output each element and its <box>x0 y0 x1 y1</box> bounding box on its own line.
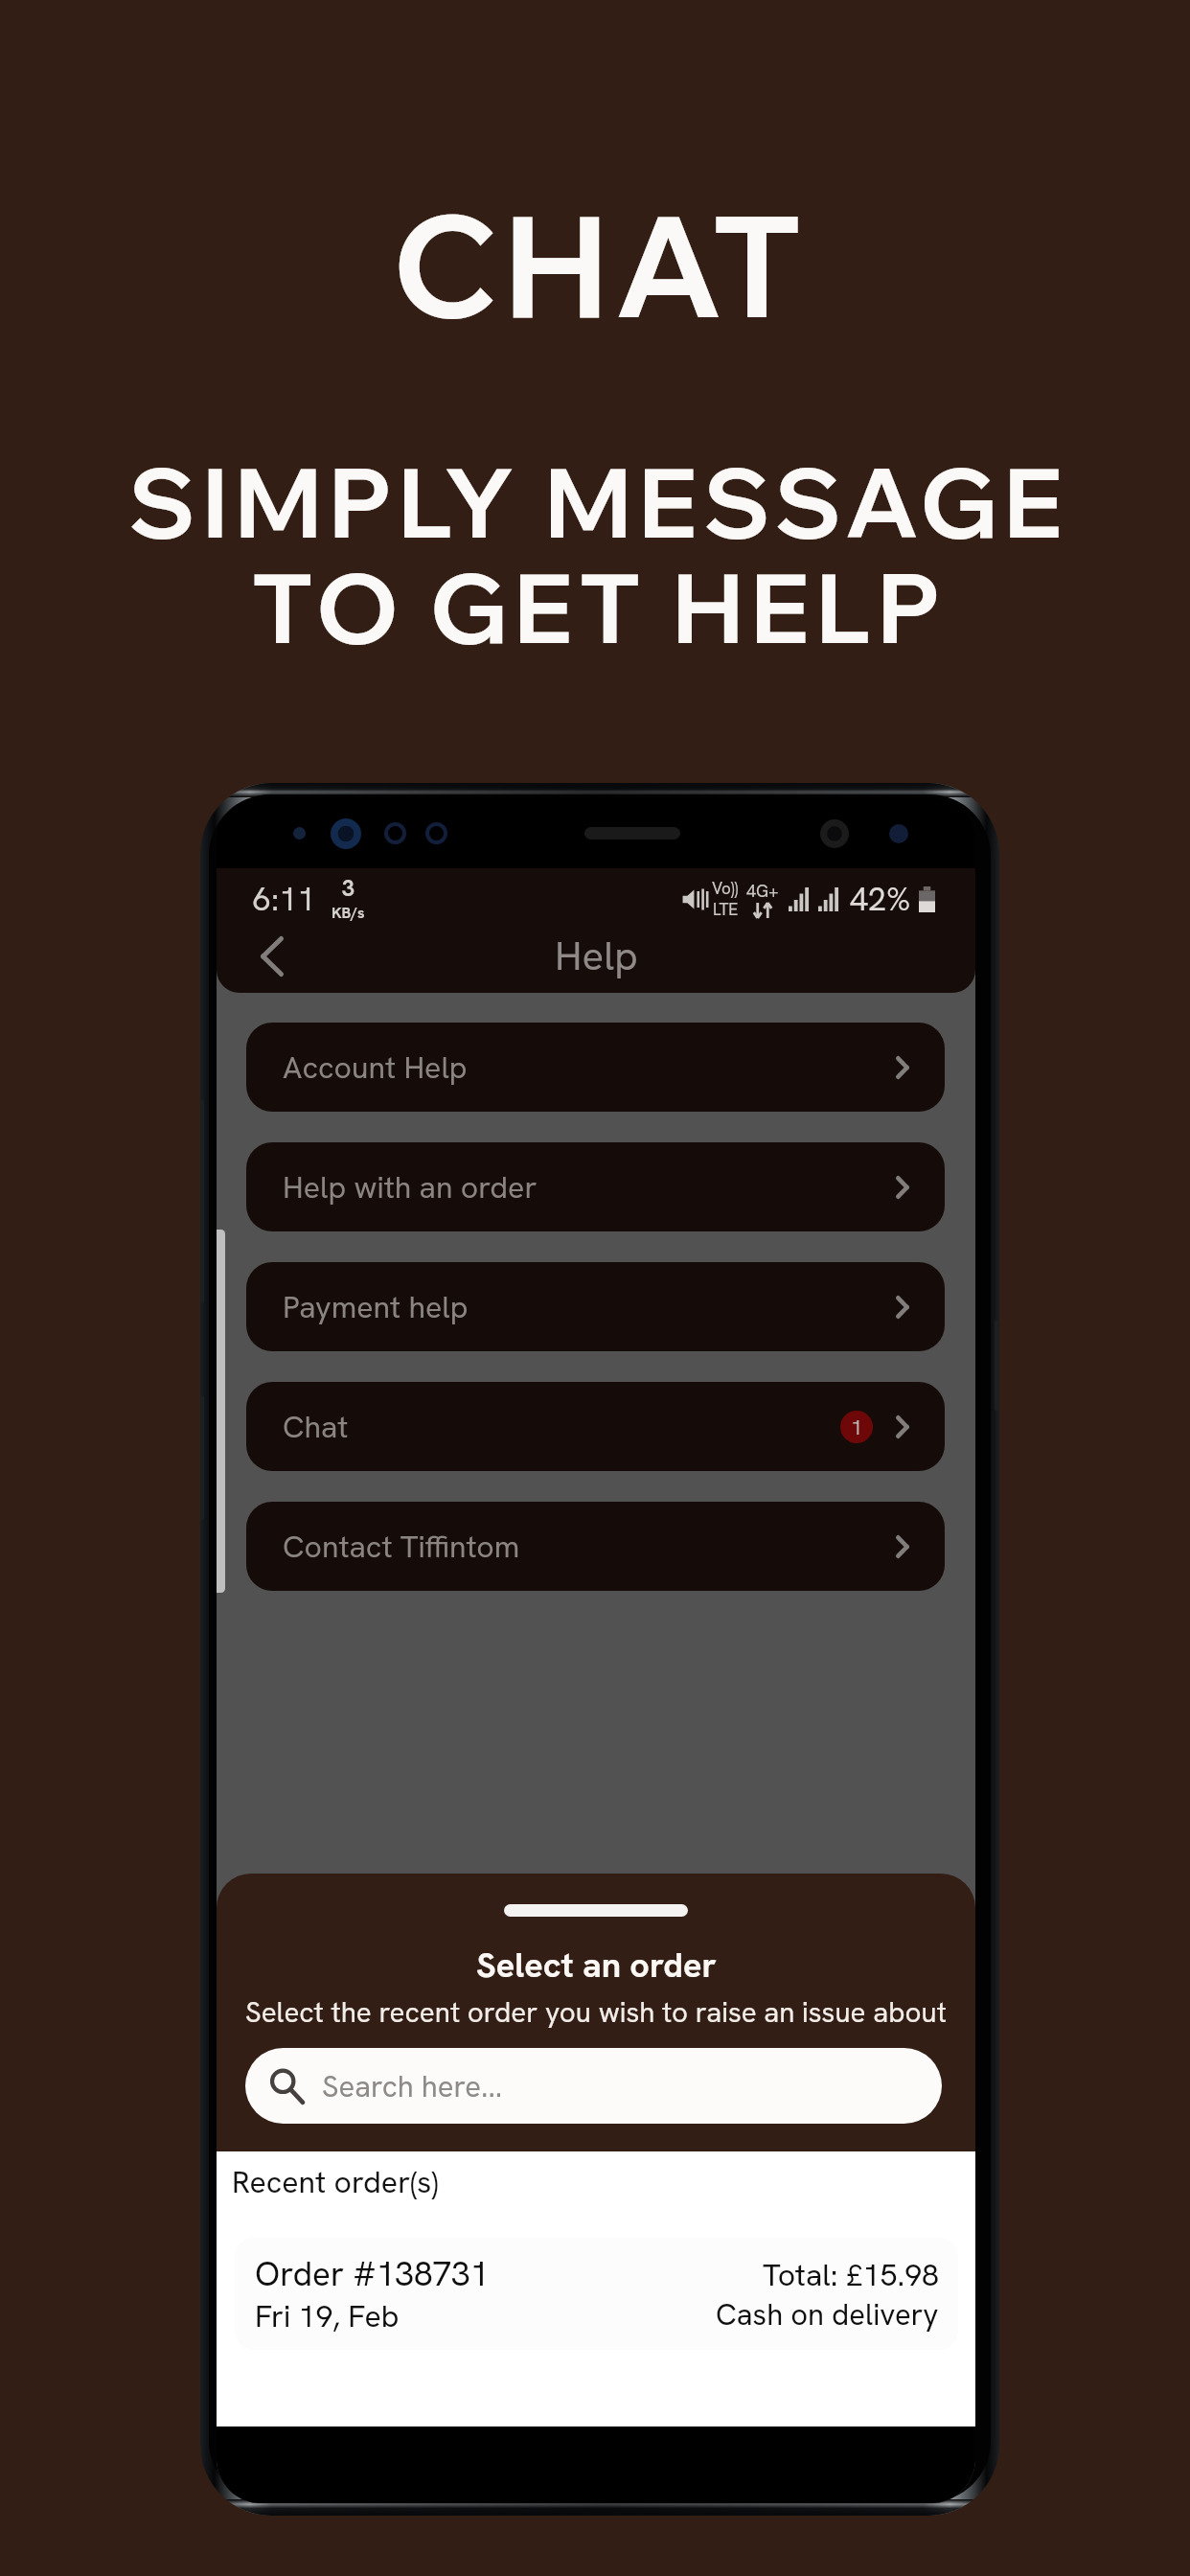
staticText: Account Help <box>283 1047 468 1088</box>
staticText: 1 <box>851 1414 863 1441</box>
button[interactable]: Account Help <box>246 1023 945 1112</box>
staticText: 6:11 <box>253 878 316 920</box>
staticText: SIMPLY MESSAGE TO GET HELP <box>128 441 1069 667</box>
staticText: 4G+ <box>746 880 779 902</box>
staticText: Recent order(s) <box>232 2162 439 2202</box>
staticText: Chat <box>283 1407 349 1447</box>
button[interactable]: Contact Tiffintom <box>246 1502 945 1591</box>
button[interactable]: Search here... <box>245 2048 942 2124</box>
staticText: Select an order <box>476 1943 717 1981</box>
staticText: Select the recent order you wish to rais… <box>245 1993 947 2030</box>
staticText: Help with an order <box>283 1167 538 1207</box>
button[interactable]: Order #138731 <box>235 2238 958 2350</box>
button[interactable]: Help with an order <box>246 1142 945 1231</box>
staticText: CHAT <box>392 176 809 353</box>
button[interactable]: Back <box>243 925 301 988</box>
staticText: Fri 19, Feb <box>255 2296 400 2336</box>
button[interactable]: Chat <box>246 1382 945 1471</box>
staticText: Payment help <box>283 1287 469 1327</box>
staticText: Vo)) <box>712 878 739 899</box>
staticText: 42% <box>850 878 911 920</box>
staticText: KB/s <box>332 903 365 923</box>
staticText: 3 <box>342 874 355 903</box>
staticText: LTE <box>713 899 739 920</box>
staticText: Cash on delivery <box>716 2295 939 2334</box>
button[interactable]: Payment help <box>246 1262 945 1351</box>
staticText: Total: £15.98 <box>763 2255 939 2295</box>
staticText: Order #138731 <box>255 2252 490 2296</box>
staticText: Contact Tiffintom <box>283 1527 520 1567</box>
staticText: Search here... <box>322 2067 503 2105</box>
staticText: Help <box>555 930 638 982</box>
